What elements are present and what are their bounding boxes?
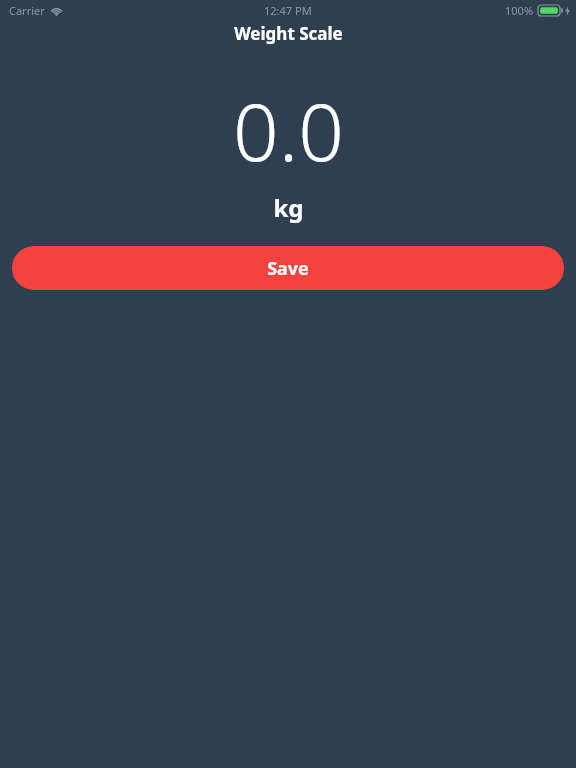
staticText: Save <box>267 256 309 281</box>
button[interactable]: Save <box>12 246 564 290</box>
staticText: Carrier <box>9 3 45 18</box>
staticText: 100% <box>505 3 534 18</box>
staticText: 0.0 <box>233 75 344 184</box>
other: Battery full <box>538 5 563 16</box>
staticText: kg <box>273 191 304 224</box>
other: Wi-Fi signal <box>50 6 63 16</box>
other: Charging <box>565 6 570 16</box>
staticText: Weight Scale <box>234 22 343 45</box>
staticText: 12:47 PM <box>264 3 312 18</box>
